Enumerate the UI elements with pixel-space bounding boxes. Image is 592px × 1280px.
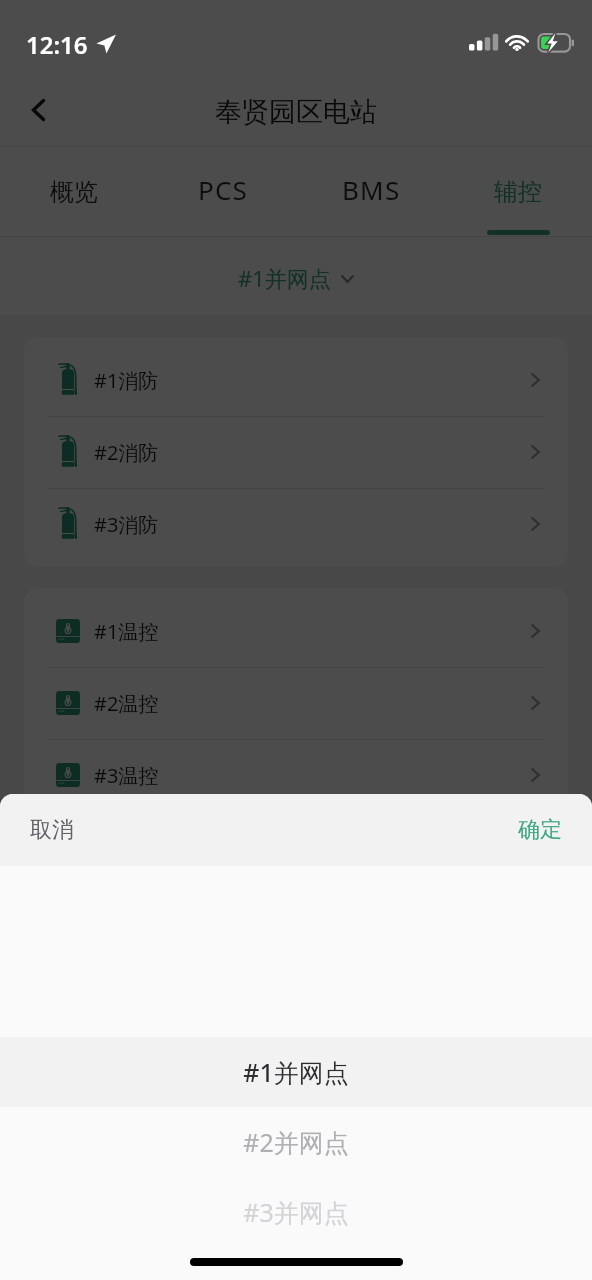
staticText: #2消防	[94, 439, 159, 466]
staticText: 取消	[30, 816, 74, 844]
button[interactable]: #1消防	[24, 344, 568, 416]
staticText: #1并网点	[243, 1055, 349, 1089]
staticText: #3并网点	[243, 1195, 349, 1229]
staticText: #1温控	[94, 618, 159, 645]
staticText: #2并网点	[243, 1125, 349, 1159]
button[interactable]: #2温控	[24, 667, 568, 739]
button[interactable]: 确定	[488, 798, 592, 862]
staticText: #3温控	[94, 762, 159, 789]
staticText: 奉贤园区电站	[215, 95, 377, 129]
button[interactable]: Back	[10, 82, 66, 138]
button[interactable]: BMS	[296, 147, 444, 237]
button[interactable]: PCS	[148, 147, 296, 237]
staticText: 辅控	[494, 177, 542, 207]
staticText: BMS	[342, 172, 401, 207]
button[interactable]: #3消防	[24, 488, 568, 560]
button[interactable]: #2并网点	[0, 1107, 592, 1177]
staticText: 概览	[50, 177, 98, 207]
button[interactable]: #3温控	[24, 739, 568, 811]
staticText: 确定	[518, 816, 562, 844]
button[interactable]: #3并网点	[0, 1177, 592, 1247]
staticText: #1并网点	[238, 263, 331, 293]
staticText: PCS	[198, 172, 249, 207]
button[interactable]: #1并网点	[0, 237, 592, 315]
staticText: #3消防	[94, 511, 159, 538]
button[interactable]: #1并网点	[0, 1037, 592, 1107]
staticText: 12:16	[26, 28, 88, 61]
button[interactable]: 辅控	[444, 147, 592, 237]
button[interactable]: 概览	[0, 147, 148, 237]
button[interactable]: #2消防	[24, 416, 568, 488]
button[interactable]: Dismiss	[0, 0, 592, 1280]
button[interactable]: #1温控	[24, 595, 568, 667]
button[interactable]: 取消	[0, 798, 104, 862]
staticText: #1消防	[94, 367, 159, 394]
staticText: #2温控	[94, 690, 159, 717]
